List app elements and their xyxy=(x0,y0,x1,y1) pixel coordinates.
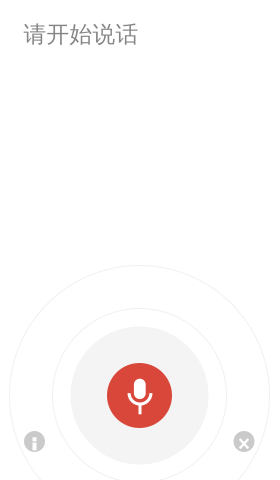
button[interactable]: Record xyxy=(107,363,172,428)
button[interactable]: Close xyxy=(233,431,254,452)
button[interactable]: Info xyxy=(24,431,45,452)
staticText: 请开始说话 xyxy=(23,21,138,48)
